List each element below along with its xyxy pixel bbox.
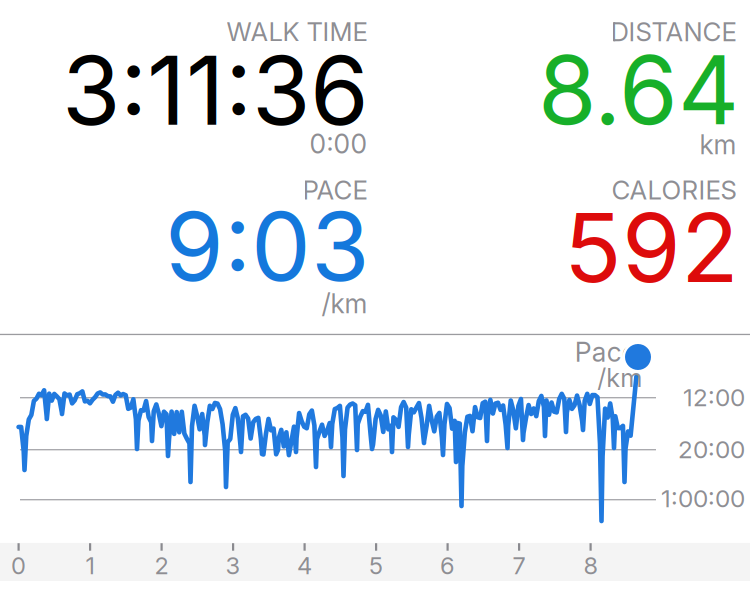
staticText: 7 [513, 551, 526, 580]
staticText: 1 [86, 551, 95, 580]
staticText: 8.64 [538, 32, 739, 147]
staticText: 6 [440, 551, 455, 580]
staticText: WALK TIME [226, 16, 367, 47]
staticText: CALORIES [611, 174, 736, 206]
staticText: 5 [369, 551, 383, 580]
staticText: 0:00 [309, 128, 367, 160]
staticText: km [699, 129, 736, 161]
staticText: 4 [297, 551, 312, 580]
staticText: Pace [575, 336, 637, 368]
staticText: /km [597, 362, 642, 393]
staticText: PACE [302, 174, 367, 206]
staticText: 3 [226, 551, 241, 580]
staticText: 9:03 [165, 189, 369, 303]
staticText: /km [321, 288, 367, 320]
staticText: DISTANCE [610, 16, 736, 47]
staticText: 0 [11, 551, 26, 580]
staticText: 3:11:36 [62, 33, 369, 147]
staticText: 2 [155, 551, 169, 580]
staticText: 592 [564, 190, 739, 305]
staticText: 8 [584, 551, 598, 580]
staticText: 1:00:00 [661, 484, 745, 513]
staticText: 12:00 [683, 383, 745, 412]
staticText: 20:00 [678, 435, 745, 464]
